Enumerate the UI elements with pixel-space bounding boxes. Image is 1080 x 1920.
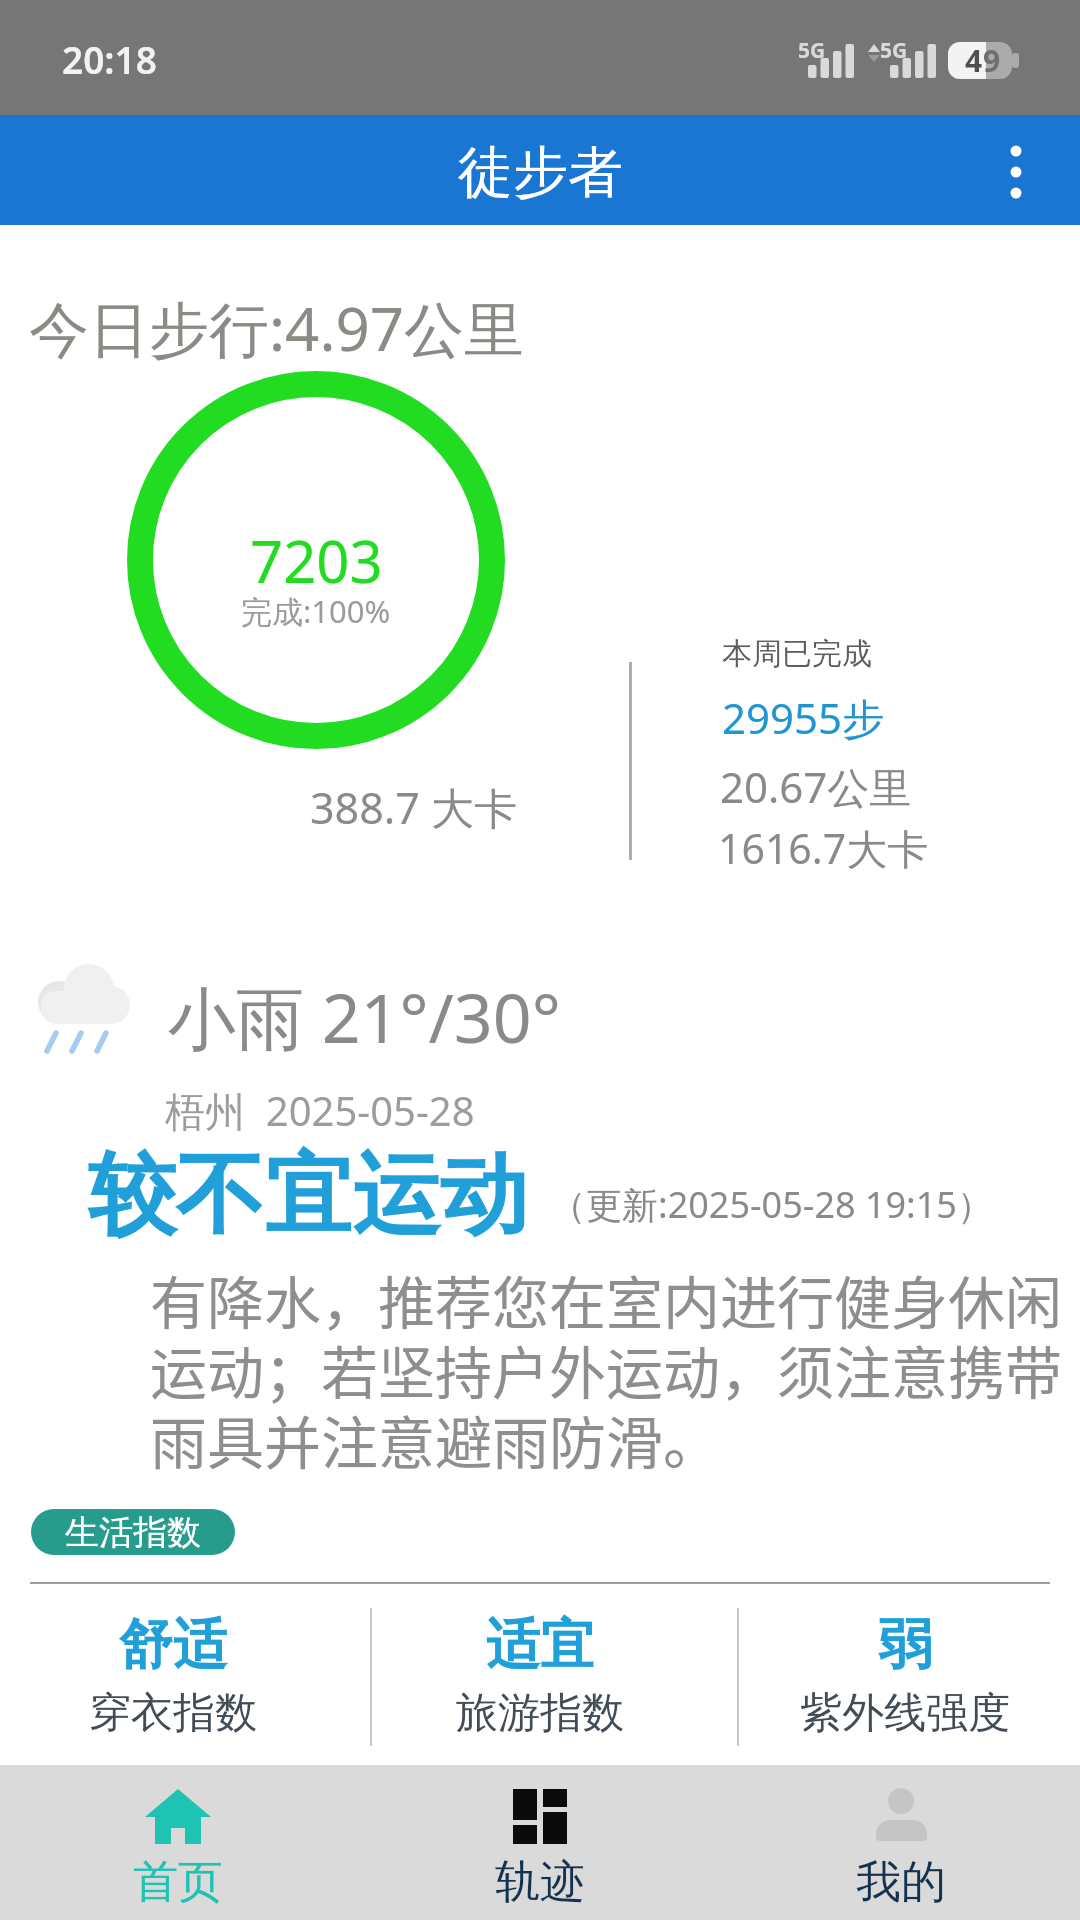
staticText: 雨具并注意避雨防滑。 — [150, 1398, 720, 1476]
button[interactable] — [980, 135, 1052, 209]
staticText: 今日步行:4.97公里 — [29, 287, 525, 369]
staticText: 旅游指数 — [456, 1687, 624, 1740]
staticText: 20.67公里 — [720, 758, 912, 815]
staticText: 5G — [798, 36, 826, 65]
staticText: 首页 — [133, 1854, 223, 1911]
staticText: 29955步 — [722, 689, 885, 746]
button[interactable] — [360, 1765, 720, 1920]
staticText: 运动；若坚持户外运动，须注意携带 — [150, 1328, 1062, 1406]
staticText: 4 — [965, 40, 983, 80]
staticText: 轨迹 — [495, 1854, 585, 1911]
staticText: 本周已完成 — [722, 635, 872, 673]
staticText: 紫外线强度 — [800, 1687, 1010, 1740]
staticText: 20:18 — [62, 34, 157, 84]
staticText: （更新:2025-05-28 19:15） — [550, 1180, 993, 1229]
staticText: 舒适 — [119, 1611, 227, 1679]
staticText: 小雨 21°/30° — [168, 970, 561, 1063]
staticText: 5G — [880, 36, 908, 65]
staticText: 388.7 大卡 — [310, 778, 518, 837]
staticText: 穿衣指数 — [89, 1687, 257, 1740]
staticText: 生活指数 — [65, 1511, 201, 1554]
staticText: 较不宜运动 — [88, 1140, 528, 1251]
staticText: 适宜 — [486, 1611, 594, 1679]
staticText: 1616.7大卡 — [718, 820, 929, 876]
staticText: 完成:100% — [241, 590, 391, 632]
button[interactable] — [720, 1765, 1080, 1920]
button[interactable] — [0, 1765, 360, 1920]
staticText: 徒步者 — [458, 138, 623, 207]
staticText: 弱 — [878, 1611, 932, 1679]
staticText: 梧州 2025-05-28 — [165, 1083, 475, 1138]
staticText: 有降水，推荐您在室内进行健身休闲 — [150, 1258, 1062, 1336]
staticText: 7203 — [250, 521, 383, 600]
button[interactable]: 生活指数 — [31, 1509, 235, 1555]
staticText: 我的 — [856, 1854, 946, 1911]
staticText: 9 — [983, 40, 1001, 80]
